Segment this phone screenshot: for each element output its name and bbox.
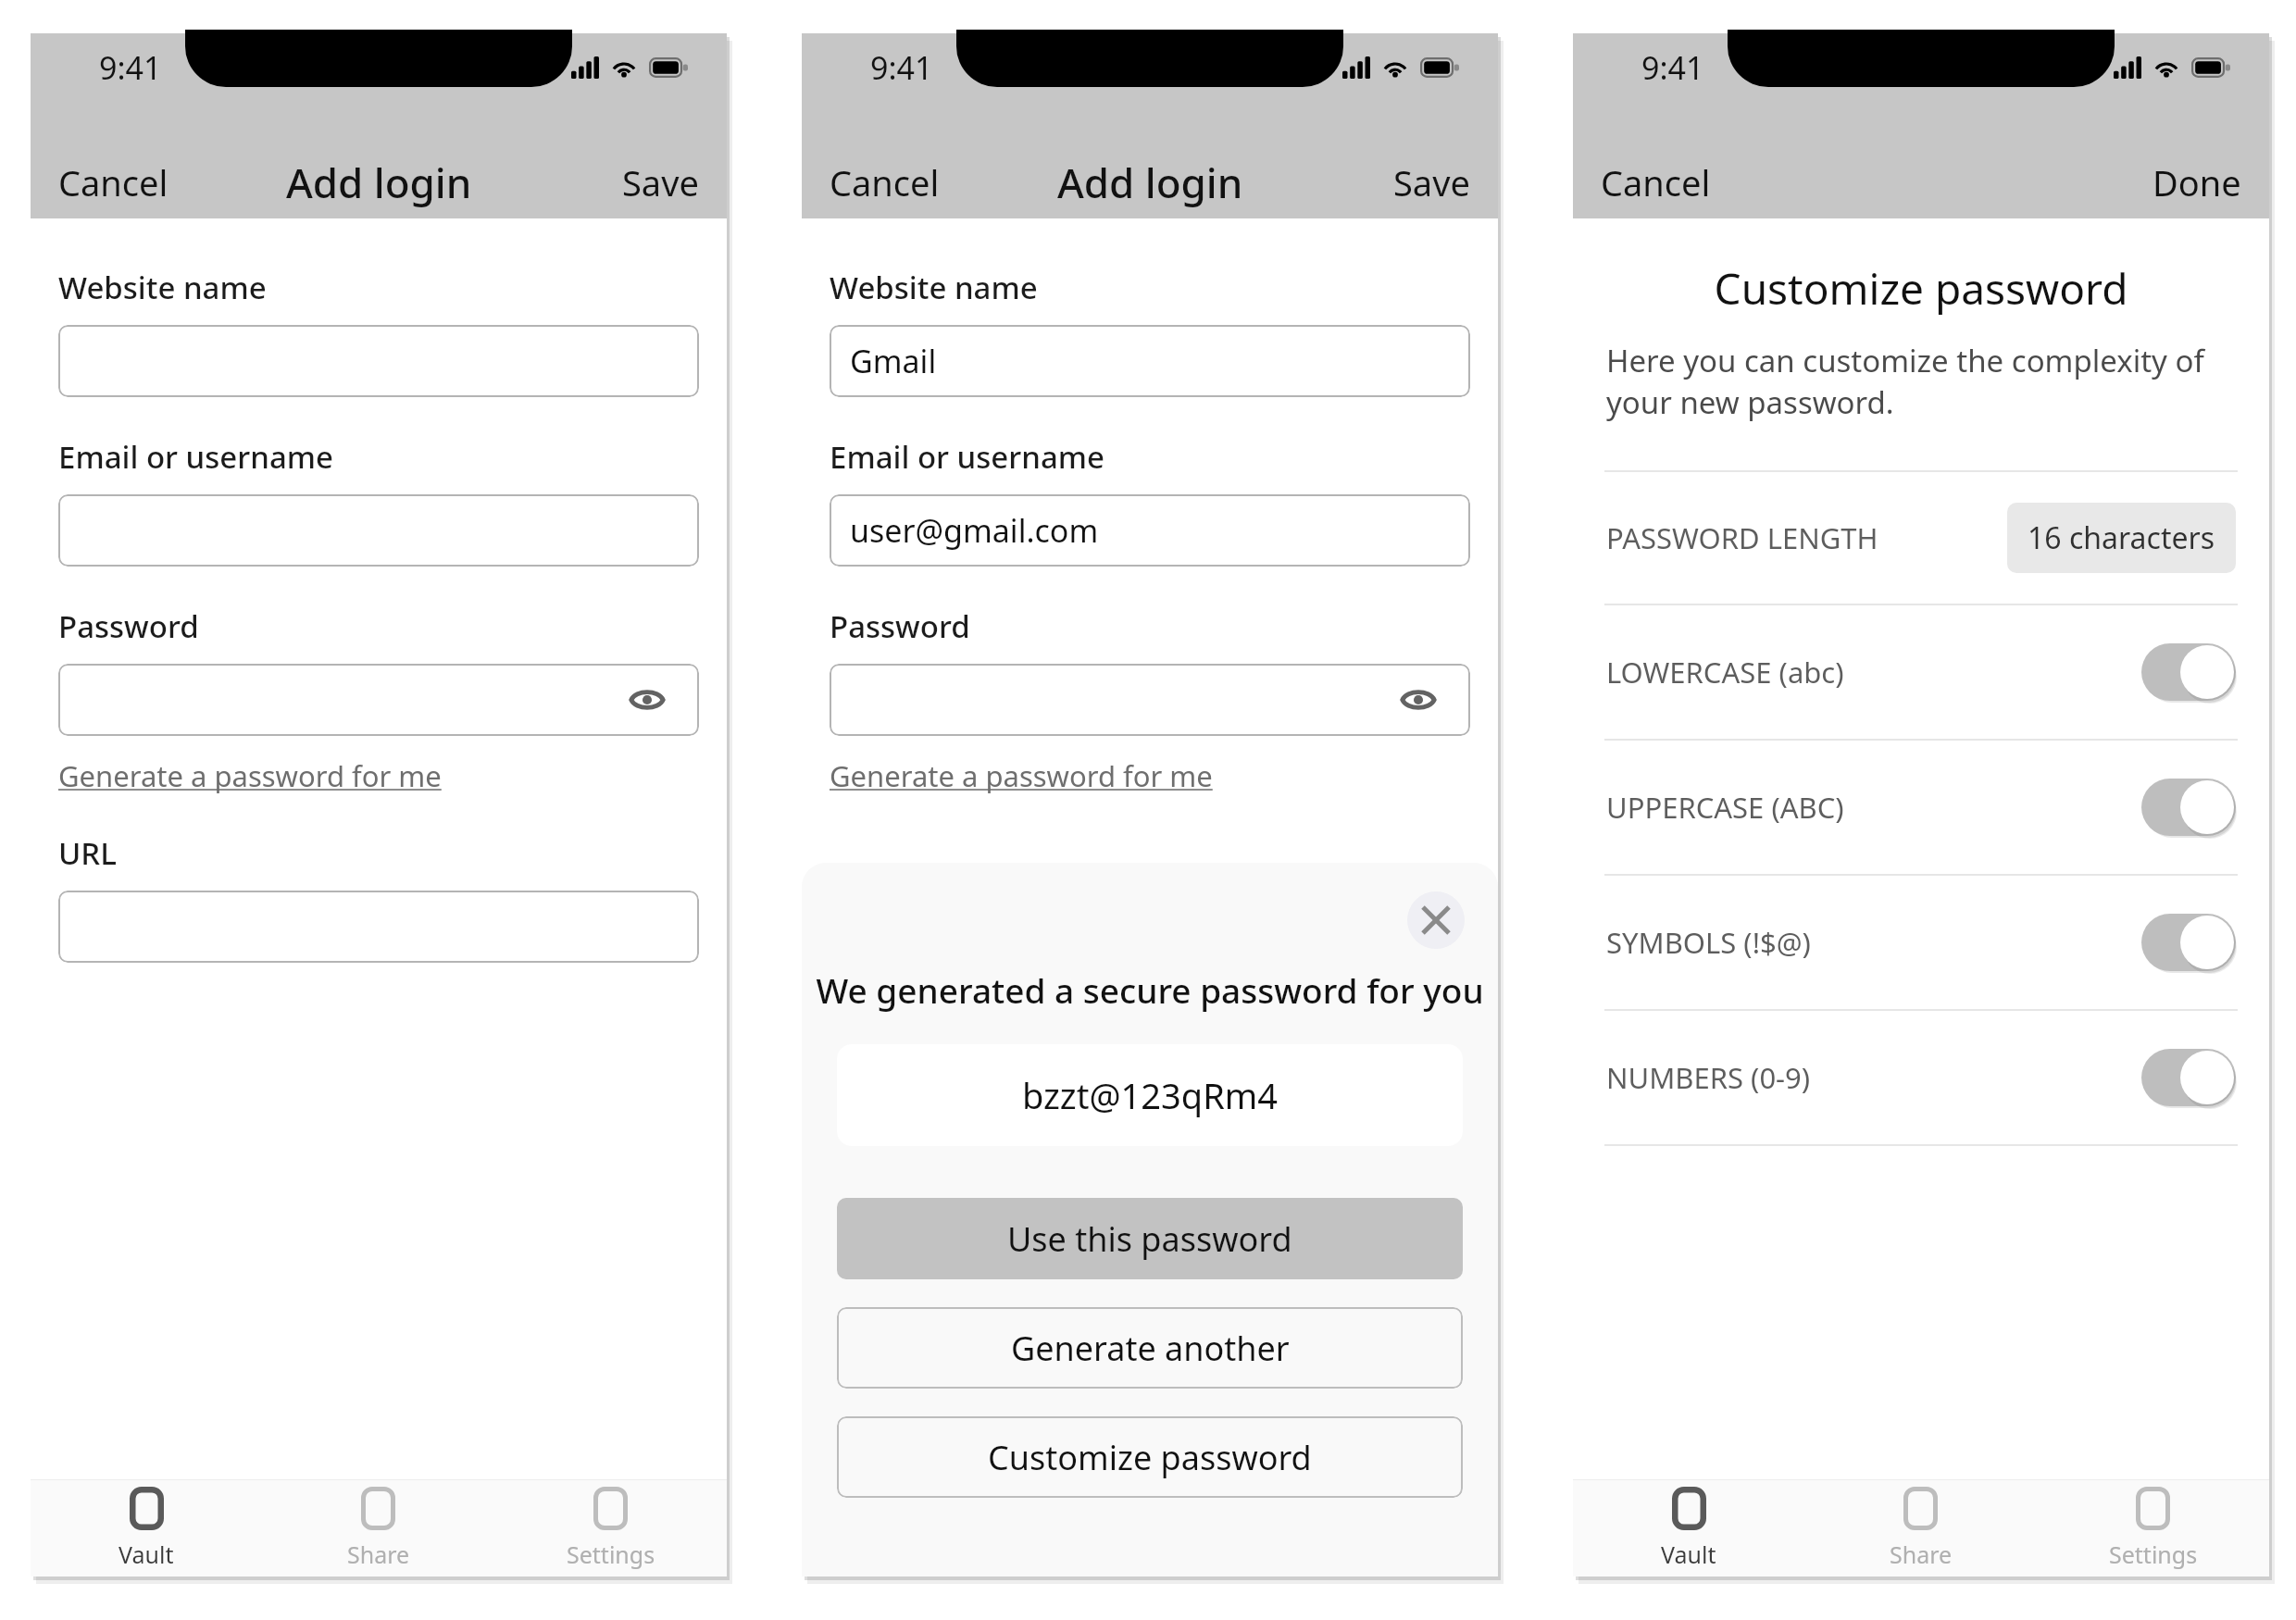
staticText: 16 characters xyxy=(2028,517,2215,558)
staticText: URL xyxy=(58,832,117,874)
staticText: Vault xyxy=(119,1539,174,1570)
button[interactable]: Save xyxy=(622,158,699,206)
button[interactable]: Customize password xyxy=(837,1416,1463,1498)
button[interactable]: Done xyxy=(2152,158,2241,206)
button[interactable]: Generate a password for me xyxy=(830,756,1213,795)
button[interactable]: Cancel xyxy=(58,158,168,206)
button[interactable]: Share xyxy=(1804,1480,2037,1576)
button[interactable]: Generate a password for me xyxy=(58,756,442,795)
button[interactable] xyxy=(58,494,699,567)
staticText: Here you can customize the complexity of… xyxy=(1606,340,2236,422)
button[interactable]: Share xyxy=(262,1480,494,1576)
button[interactable]: Settings xyxy=(2037,1480,2269,1576)
staticText: Email or username xyxy=(58,436,333,478)
button[interactable]: Show password xyxy=(1391,672,1446,728)
staticText: user@gmail.com xyxy=(850,509,1099,552)
staticText: Website name xyxy=(58,267,267,308)
staticText: LOWERCASE (abc) xyxy=(1606,653,1844,692)
staticText: Vault xyxy=(1661,1539,1716,1570)
button[interactable]: Show password xyxy=(58,664,699,736)
staticText: Email or username xyxy=(830,436,1104,478)
staticText: SYMBOLS (!$@) xyxy=(1606,923,1811,962)
staticText: Password xyxy=(830,605,970,647)
staticText: Password xyxy=(58,605,199,647)
staticText: 9:41 xyxy=(1641,46,1704,89)
button[interactable]: Save xyxy=(1393,158,1470,206)
button[interactable]: Vault xyxy=(31,1480,262,1576)
staticText: NUMBERS (0-9) xyxy=(1606,1058,1811,1097)
button[interactable]: Gmail xyxy=(830,325,1470,397)
staticText: Customize password xyxy=(1573,259,2269,318)
staticText: 9:41 xyxy=(99,46,162,89)
staticText: Use this password xyxy=(1007,1216,1292,1262)
button[interactable]: Vault xyxy=(1573,1480,1804,1576)
button[interactable] xyxy=(58,891,699,963)
staticText: We generated a secure password for you xyxy=(802,966,1498,1013)
button[interactable]: SYMBOLS (!$@) xyxy=(1606,876,2236,1009)
staticText: bzzt@123qRm4 xyxy=(1022,1071,1279,1119)
button[interactable]: Settings xyxy=(494,1480,727,1576)
staticText: 9:41 xyxy=(870,46,933,89)
staticText: Share xyxy=(1890,1539,1953,1570)
staticText: Share xyxy=(347,1539,410,1570)
button[interactable]: NUMBERS (0-9) xyxy=(1606,1011,2236,1144)
staticText: Add login xyxy=(286,155,472,210)
staticText: PASSWORD LENGTH xyxy=(1606,518,1878,557)
staticText: Settings xyxy=(2109,1539,2198,1570)
staticText: Generate another xyxy=(1011,1326,1290,1371)
button[interactable]: Cancel xyxy=(1601,158,1711,206)
button[interactable]: LOWERCASE (abc) xyxy=(1606,605,2236,739)
button[interactable] xyxy=(58,325,699,397)
button[interactable]: bzzt@123qRm4 xyxy=(837,1044,1463,1146)
button[interactable]: user@gmail.com xyxy=(830,494,1470,567)
button[interactable]: PASSWORD LENGTH xyxy=(1606,472,2236,604)
staticText: Settings xyxy=(567,1539,655,1570)
staticText: Gmail xyxy=(850,340,937,382)
staticText: Website name xyxy=(830,267,1038,308)
button[interactable]: Cancel xyxy=(830,158,940,206)
button[interactable]: Show password xyxy=(619,672,675,728)
button[interactable]: Close xyxy=(1407,891,1465,949)
button[interactable]: UPPERCASE (ABC) xyxy=(1606,741,2236,874)
staticText: Add login xyxy=(1057,155,1243,210)
staticText: Customize password xyxy=(988,1435,1312,1480)
button[interactable]: Use this password xyxy=(837,1198,1463,1279)
button[interactable]: Generate another xyxy=(837,1307,1463,1389)
staticText: UPPERCASE (ABC) xyxy=(1606,788,1844,827)
button[interactable]: Show password xyxy=(830,664,1470,736)
